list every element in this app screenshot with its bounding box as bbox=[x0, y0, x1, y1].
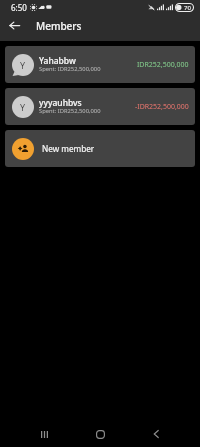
button[interactable]: Back bbox=[144, 422, 168, 446]
button[interactable]: Recent apps bbox=[32, 422, 56, 446]
button[interactable]: Home bbox=[88, 422, 112, 446]
button[interactable]: Y bbox=[5, 46, 195, 83]
staticText: Members bbox=[36, 19, 82, 33]
staticText: Spent: IDR252,500,000 bbox=[39, 107, 101, 115]
button[interactable]: Back bbox=[0, 13, 29, 38]
button[interactable]: New member bbox=[5, 130, 195, 167]
staticText: Y bbox=[20, 59, 26, 71]
staticText: Yahabbw bbox=[39, 55, 76, 67]
staticText: 6:50 bbox=[11, 2, 27, 13]
staticText: Spent: IDR252,500,000 bbox=[39, 65, 101, 73]
staticText: Y bbox=[20, 101, 26, 113]
staticText: 70 bbox=[184, 4, 191, 12]
staticText: New member bbox=[42, 143, 95, 154]
staticText: yyyauhbvs bbox=[39, 97, 82, 109]
staticText: -IDR252,500,000 bbox=[135, 102, 189, 112]
button[interactable]: Y bbox=[5, 88, 195, 125]
staticText: IDR252,500,000 bbox=[137, 60, 189, 70]
